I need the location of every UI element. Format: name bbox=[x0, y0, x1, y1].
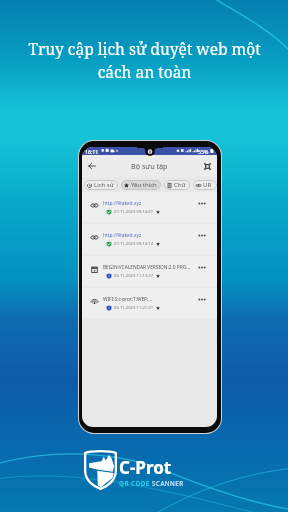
staticText: SCANNER bbox=[150, 479, 184, 487]
staticText: Yêu thích bbox=[131, 181, 157, 189]
button[interactable]: Scan QR code bbox=[201, 160, 213, 172]
button[interactable]: WIFI:S:c-prot;T:WEP;... bbox=[82, 288, 217, 318]
button[interactable]: More options bbox=[196, 231, 208, 239]
button[interactable]: Yêu thích bbox=[121, 180, 161, 190]
button[interactable]: URL bbox=[193, 180, 217, 190]
staticText: 07.11.2023 09:14:14 bbox=[114, 241, 154, 247]
button[interactable]: http://9takeit.xyz bbox=[82, 192, 217, 222]
staticText: 55% bbox=[198, 148, 209, 155]
button[interactable]: http://9takeit.xyz bbox=[82, 224, 217, 254]
staticText: http://9takeit.xyz bbox=[103, 232, 142, 239]
button[interactable]: BEGIN:VCALENDAR VERSION:2.0 PRO... bbox=[82, 256, 217, 286]
staticText: QR CODE bbox=[119, 479, 150, 487]
staticText: 16:11 bbox=[85, 148, 99, 155]
staticText: Bộ sưu tập bbox=[131, 161, 168, 171]
staticText: BEGIN:VCALENDAR VERSION:2.0 PRO... bbox=[103, 264, 191, 271]
button[interactable]: More options bbox=[196, 199, 208, 207]
staticText: Lịch sử bbox=[94, 181, 114, 189]
button[interactable]: More options bbox=[196, 263, 208, 271]
staticText: http://9takeit.xyz bbox=[103, 200, 142, 207]
staticText: WIFI:S:c-prot;T:WEP;... bbox=[103, 296, 153, 303]
button[interactable]: Chữ bbox=[164, 180, 190, 190]
staticText: URL bbox=[203, 181, 213, 189]
staticText: Truy cập lịch sử duyệt web một cách an t… bbox=[28, 38, 261, 83]
button[interactable]: Lịch sử bbox=[84, 180, 118, 190]
staticText: C-Prot bbox=[119, 456, 172, 479]
staticText: 06.11.2023 11:21:31 bbox=[114, 305, 154, 311]
button[interactable]: More options bbox=[196, 295, 208, 303]
staticText: Chữ bbox=[174, 181, 186, 189]
staticText: 07.11.2023 09:14:41 bbox=[114, 209, 154, 215]
button[interactable]: Back bbox=[86, 160, 98, 172]
staticText: 06.11.2023 11:13:37 bbox=[114, 273, 154, 279]
